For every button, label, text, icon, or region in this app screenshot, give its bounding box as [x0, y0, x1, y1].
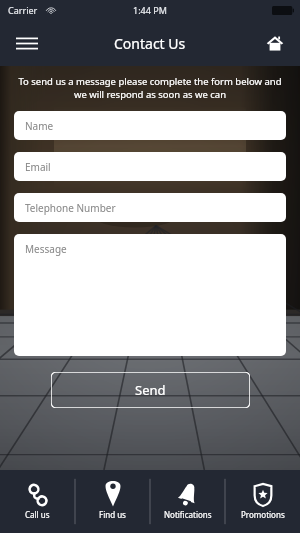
button[interactable]: Message: [14, 234, 286, 356]
button[interactable]: Menu: [10, 26, 44, 60]
staticText: 1:44 PM: [133, 4, 167, 16]
staticText: Notifications: [164, 509, 212, 520]
staticText: Carrier: [8, 4, 38, 16]
button[interactable]: Home: [258, 26, 292, 60]
staticText: Telephone Number: [25, 201, 116, 215]
button[interactable]: Send: [51, 372, 250, 408]
button[interactable]: Call us: [0, 470, 75, 533]
button[interactable]: Notifications: [150, 470, 225, 533]
staticText: To send us a message please complete the…: [14, 75, 286, 101]
staticText: Message: [25, 242, 67, 256]
staticText: Find us: [99, 509, 126, 520]
staticText: Send: [135, 381, 166, 399]
staticText: Call us: [25, 509, 50, 520]
staticText: Promotions: [241, 509, 285, 520]
staticText: Email: [25, 160, 51, 174]
staticText: Name: [25, 119, 54, 133]
button[interactable]: Find us: [75, 470, 150, 533]
button[interactable]: Email: [14, 152, 286, 181]
button[interactable]: Name: [14, 111, 286, 140]
button[interactable]: Promotions: [225, 470, 300, 533]
staticText: Contact Us: [114, 34, 186, 53]
button[interactable]: Telephone Number: [14, 193, 286, 222]
